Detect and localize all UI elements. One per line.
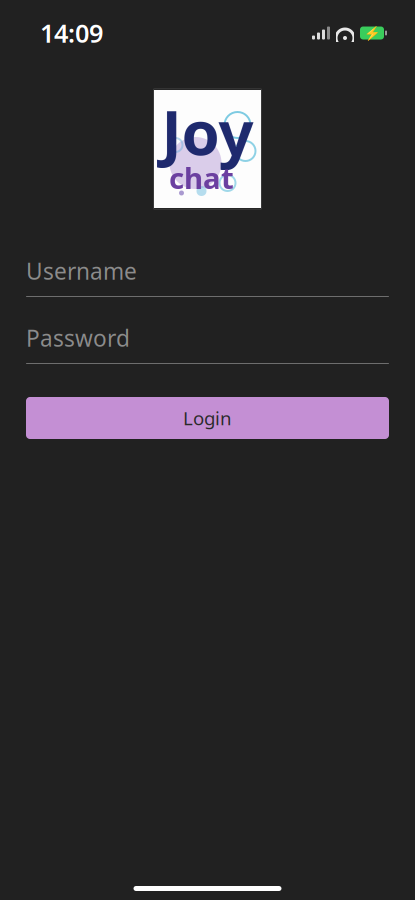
- staticText: Joy: [161, 91, 253, 172]
- staticText: 14:09: [40, 16, 103, 50]
- button[interactable]: Login: [26, 397, 389, 439]
- staticText: chat: [169, 158, 234, 197]
- staticText: Username: [26, 256, 137, 286]
- staticText: Login: [183, 406, 232, 430]
- staticText: Password: [26, 323, 130, 353]
- staticText: ⚡: [363, 25, 380, 41]
